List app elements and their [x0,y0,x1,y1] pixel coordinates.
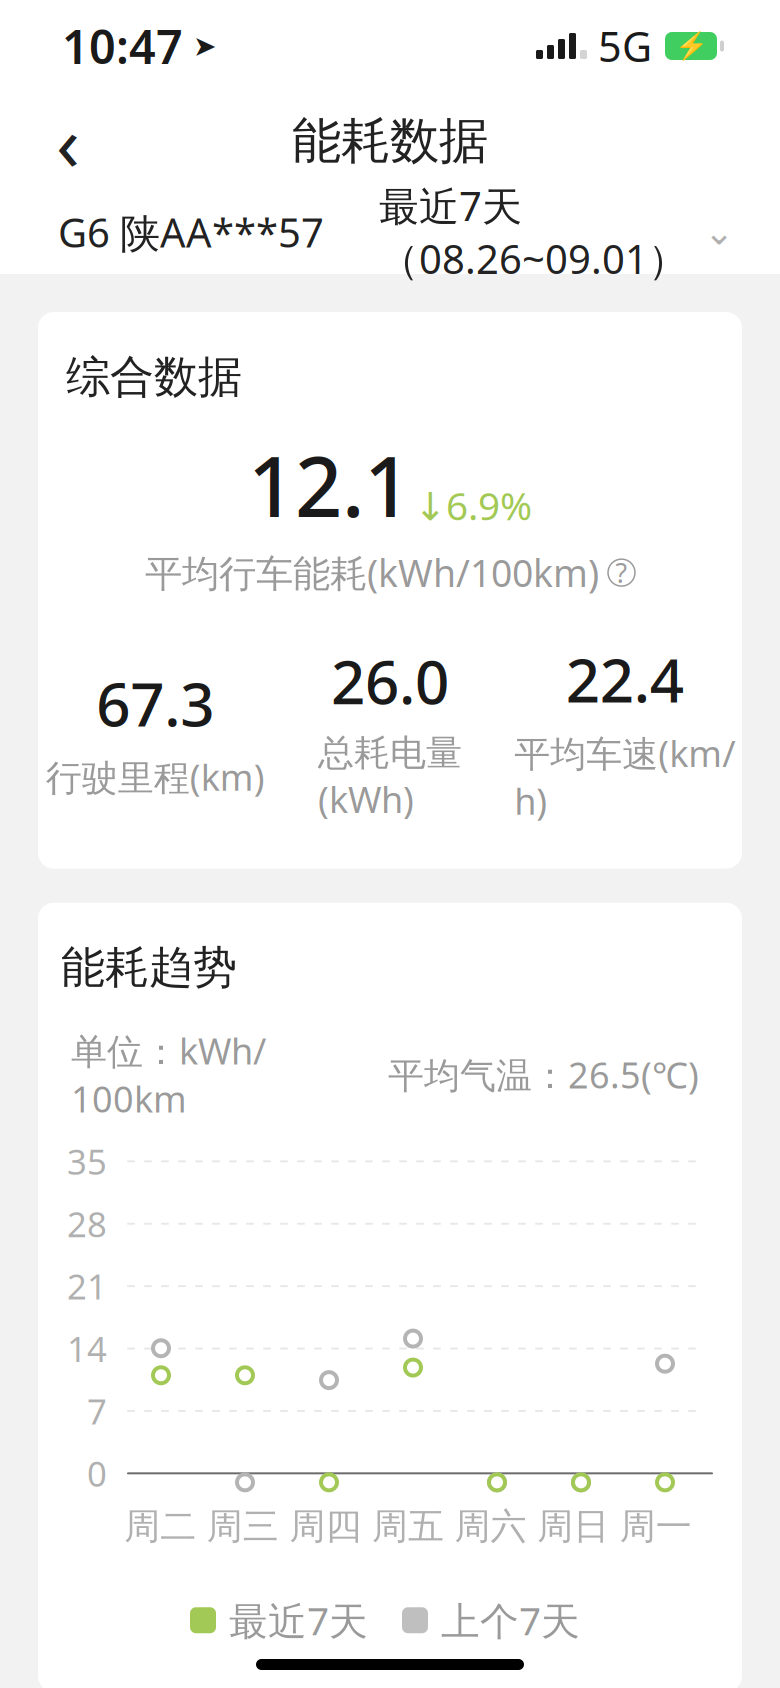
staticText: ⌄ [704,212,734,252]
staticText: 26.0 [331,641,449,721]
staticText: 0 [87,1450,107,1496]
staticText: 周一 [620,1504,692,1548]
staticText: 最近7天（08.26~09.01） [379,179,688,285]
staticText: 21 [67,1263,107,1309]
staticText: 平均气温：26.5(℃) [388,1051,699,1098]
staticText: 周二 [124,1504,196,1548]
staticText: 5G [598,19,652,73]
staticText: 综合数据 [66,350,242,404]
staticText: 14 [67,1325,107,1371]
staticText: 上个7天 [441,1595,580,1646]
staticText: 22.4 [566,639,684,719]
staticText: 平均车速(km/h) [514,729,735,825]
staticText: 35 [67,1138,107,1184]
staticText: 周日 [537,1504,609,1548]
staticText: ↓6.9% [414,479,532,531]
staticText: 周五 [372,1504,444,1548]
button[interactable]: 返回 [30,103,106,179]
staticText: ⚡ [674,31,707,61]
staticText: 总耗电量(kWh) [318,731,462,823]
button[interactable]: 平均行车能耗说明 [608,559,635,586]
staticText: 67.3 [96,663,214,743]
staticText: ? [615,555,627,590]
staticText: 周六 [455,1504,527,1548]
staticText: 周三 [207,1504,279,1548]
staticText: 7 [87,1388,107,1434]
staticText: 能耗趋势 [61,941,237,995]
staticText: 行驶里程(km) [46,753,265,801]
staticText: 平均行车能耗(kWh/100km) [145,548,599,597]
staticText: 最近7天 [229,1595,368,1646]
button[interactable]: G6 陕AA***57 [58,195,324,269]
button[interactable]: 最近7天（08.26~09.01） [379,169,734,295]
staticText: 周四 [289,1504,361,1548]
staticText: ➤ [193,30,216,62]
staticText: ‹ [56,90,80,192]
staticText: G6 陕AA***57 [58,205,324,259]
staticText: 12.1 [248,430,411,540]
staticText: 单位：kWh/100km [71,1027,266,1122]
staticText: 10:47 [62,15,183,77]
staticText: 28 [67,1201,107,1247]
staticText: 能耗数据 [292,111,488,171]
